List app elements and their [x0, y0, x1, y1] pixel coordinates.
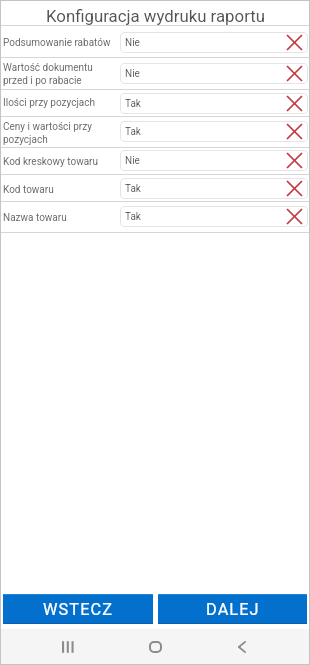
button[interactable]: Back	[224, 629, 260, 665]
button[interactable]: Tak	[120, 206, 308, 227]
button[interactable]: Tak	[120, 93, 308, 114]
staticText: Ilości przy pozycjach	[3, 97, 120, 109]
button[interactable]: Usuń	[287, 96, 302, 111]
button[interactable]: Recent apps	[50, 629, 86, 665]
button[interactable]: Ilości przy pozycjach	[0, 90, 310, 116]
button[interactable]: Nie	[120, 32, 308, 53]
button[interactable]: Nazwa towaru	[0, 202, 310, 232]
button[interactable]: Usuń	[287, 153, 302, 168]
staticText: Wartość dokumentu przed i po rabacie	[3, 62, 120, 86]
button[interactable]: DALEJ	[158, 594, 307, 624]
staticText: WSTECZ	[43, 600, 114, 619]
staticText: DALEJ	[206, 600, 260, 619]
button[interactable]: Kod kreskowy towaru	[0, 148, 310, 174]
staticText: Kod towaru	[3, 184, 120, 196]
button[interactable]: Usuń	[287, 66, 302, 81]
button[interactable]: Tak	[120, 121, 308, 142]
button[interactable]: Nie	[120, 63, 308, 84]
button[interactable]: Home	[137, 629, 173, 665]
staticText: Nazwa towaru	[3, 212, 120, 224]
staticText: Podsumowanie rabatów	[3, 37, 120, 49]
staticText: Tak	[125, 126, 141, 138]
staticText: Tak	[125, 98, 141, 110]
button[interactable]: Usuń	[287, 35, 302, 50]
button[interactable]: Wartość dokumentu przed i po rabacie	[0, 58, 310, 89]
staticText: Nie	[125, 37, 140, 49]
button[interactable]: Usuń	[287, 124, 302, 139]
button[interactable]: Tak	[120, 178, 308, 199]
button[interactable]: Nie	[120, 150, 308, 171]
staticText: Nie	[125, 68, 140, 80]
staticText: Nie	[125, 155, 140, 167]
staticText: Tak	[125, 183, 141, 195]
button[interactable]: Podsumowanie rabatów	[0, 26, 310, 57]
staticText: Kod kreskowy towaru	[3, 156, 120, 168]
button[interactable]: Usuń	[287, 181, 302, 196]
button[interactable]: Ceny i wartości przy pozycjach	[0, 117, 310, 147]
button[interactable]: Kod towaru	[0, 175, 310, 201]
staticText: Konfiguracja wydruku raportu	[46, 6, 265, 25]
button[interactable]: WSTECZ	[3, 594, 153, 624]
staticText: Tak	[125, 211, 141, 223]
button[interactable]: Usuń	[287, 209, 302, 224]
staticText: Ceny i wartości przy pozycjach	[3, 121, 120, 145]
